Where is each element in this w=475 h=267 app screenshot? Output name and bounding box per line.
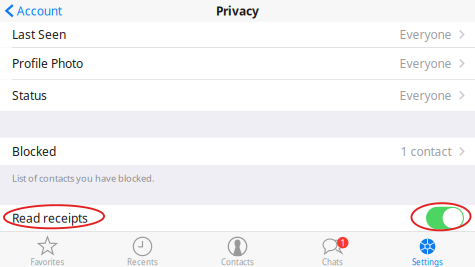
button[interactable]: Recents [95,232,190,267]
staticText: Read receipts [12,210,88,226]
button[interactable]: Account [0,0,69,22]
button[interactable]: Last Seen [0,22,475,47]
button[interactable]: Read receipts [0,205,475,231]
staticText: Chats [322,257,343,267]
staticText: Contacts [221,257,254,267]
staticText: Profile Photo [12,55,83,71]
staticText: Everyone [399,26,451,42]
button[interactable]: 1 [285,232,380,267]
staticText: Everyone [399,87,451,103]
staticText: List of contacts you have blocked. [12,172,155,184]
staticText: Settings [412,257,443,267]
button[interactable]: Contacts [190,232,285,267]
button[interactable]: Status [0,80,475,111]
button[interactable]: Profile Photo [0,48,475,79]
staticText: Last Seen [12,26,66,42]
staticText: Account [17,3,62,19]
staticText: 1 [340,236,345,249]
button[interactable]: Settings [380,232,475,267]
staticText: Favorites [30,257,64,267]
staticText: Blocked [12,143,56,159]
staticText: Everyone [399,55,451,71]
staticText: Recents [127,257,158,267]
staticText: Status [12,87,47,103]
button[interactable]: Favorites [0,232,95,267]
button[interactable]: Blocked [0,138,475,165]
staticText: Privacy [216,3,259,19]
staticText: 1 contact [400,143,451,159]
